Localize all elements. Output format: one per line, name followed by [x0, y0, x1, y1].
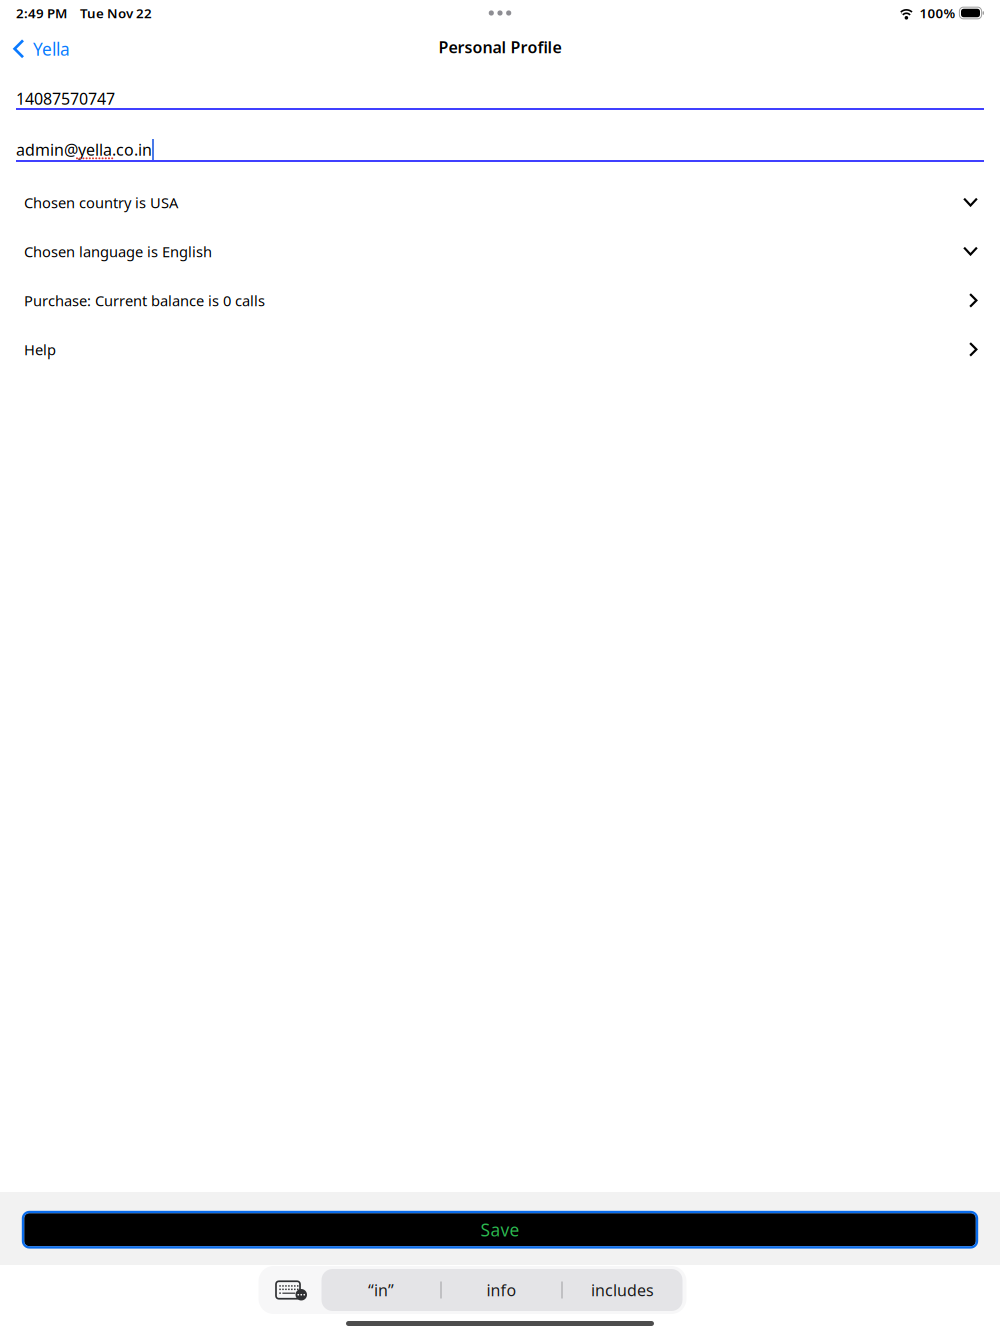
button[interactable]: Keyboard options [262, 1269, 321, 1311]
button[interactable]: admin@yella.co.in [0, 139, 1000, 162]
button[interactable]: 14087570747 [0, 89, 1000, 110]
staticText: 14087570747 [16, 88, 115, 109]
button[interactable]: Help [0, 325, 1000, 374]
staticText: includes [591, 1279, 654, 1301]
button[interactable]: Yella [0, 29, 80, 64]
button[interactable]: Chosen language is English [0, 227, 1000, 276]
staticText: “in” [368, 1279, 394, 1301]
staticText: Personal Profile [438, 36, 561, 58]
staticText: Yella [33, 37, 70, 60]
staticText: 2:49 PM [16, 4, 67, 22]
staticText: Help [24, 340, 56, 359]
staticText: Tue Nov 22 [80, 4, 152, 22]
button[interactable]: info [441, 1269, 561, 1311]
staticText: admin@yella.co.in [16, 139, 152, 160]
staticText: 100% [919, 4, 955, 22]
staticText: info [486, 1279, 516, 1301]
staticText: Chosen country is USA [24, 193, 178, 212]
button[interactable]: includes [562, 1269, 682, 1311]
button[interactable]: Save [0, 1212, 1000, 1247]
button[interactable]: “in” [321, 1269, 440, 1311]
button[interactable]: Purchase: Current balance is 0 calls [0, 276, 1000, 325]
staticText: Save [480, 1218, 519, 1241]
button[interactable]: Chosen country is USA [0, 178, 1000, 227]
staticText: Chosen language is English [24, 242, 212, 261]
staticText: Purchase: Current balance is 0 calls [24, 291, 265, 310]
